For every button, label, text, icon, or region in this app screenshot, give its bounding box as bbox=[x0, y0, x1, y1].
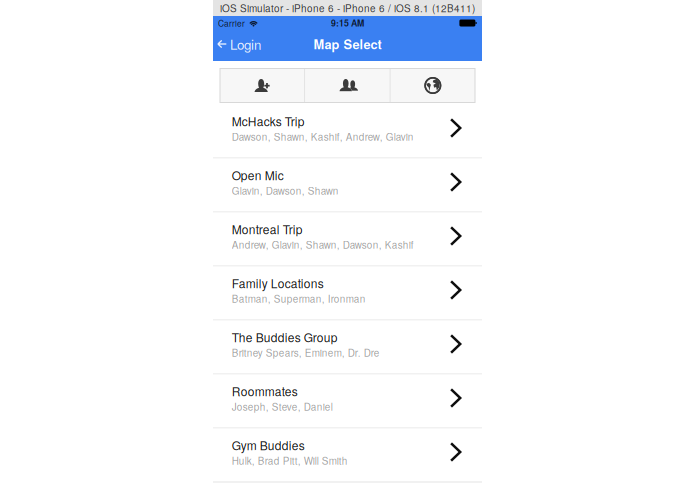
staticText: Open Mic bbox=[232, 166, 284, 184]
staticText: 9:15 AM bbox=[331, 17, 364, 29]
staticText: The Buddies Group bbox=[232, 328, 338, 346]
staticText: Montreal Trip bbox=[232, 220, 303, 238]
staticText: Family Locations bbox=[232, 274, 324, 292]
staticText: Roommates bbox=[232, 382, 298, 400]
button[interactable]: McHacks Trip bbox=[213, 104, 482, 158]
button[interactable]: Family Locations bbox=[213, 266, 482, 320]
button[interactable]: Montreal Trip bbox=[213, 212, 482, 266]
button[interactable]: Open Mic bbox=[213, 158, 482, 212]
button[interactable]: Login bbox=[213, 30, 267, 61]
staticText: iOS Simulator - iPhone 6 - iPhone 6 / iO… bbox=[220, 1, 475, 15]
button[interactable]: Gym Buddies bbox=[213, 428, 482, 482]
staticText: Login bbox=[230, 34, 261, 54]
staticText: Andrew, Glavin, Shawn, Dawson, Kashif bbox=[232, 237, 414, 251]
button[interactable]: The Buddies Group bbox=[213, 320, 482, 374]
button[interactable]: World map bbox=[391, 68, 475, 102]
staticText: Joseph, Steve, Daniel bbox=[232, 399, 333, 413]
staticText: Hulk, Brad Pitt, Will Smith bbox=[232, 453, 348, 467]
staticText: Map Select bbox=[313, 35, 381, 53]
button[interactable]: Friends bbox=[305, 68, 390, 102]
staticText: Glavin, Dawson, Shawn bbox=[232, 183, 339, 197]
staticText: Dawson, Shawn, Kashif, Andrew, Glavin bbox=[232, 129, 414, 143]
staticText: Batman, Superman, Ironman bbox=[232, 291, 366, 305]
button[interactable]: Add friend bbox=[220, 68, 304, 102]
staticText: McHacks Trip bbox=[232, 112, 305, 130]
staticText: Britney Spears, Eminem, Dr. Dre bbox=[232, 345, 380, 359]
button[interactable]: Roommates bbox=[213, 374, 482, 428]
staticText: Carrier bbox=[218, 17, 245, 29]
staticText: Gym Buddies bbox=[232, 436, 305, 454]
